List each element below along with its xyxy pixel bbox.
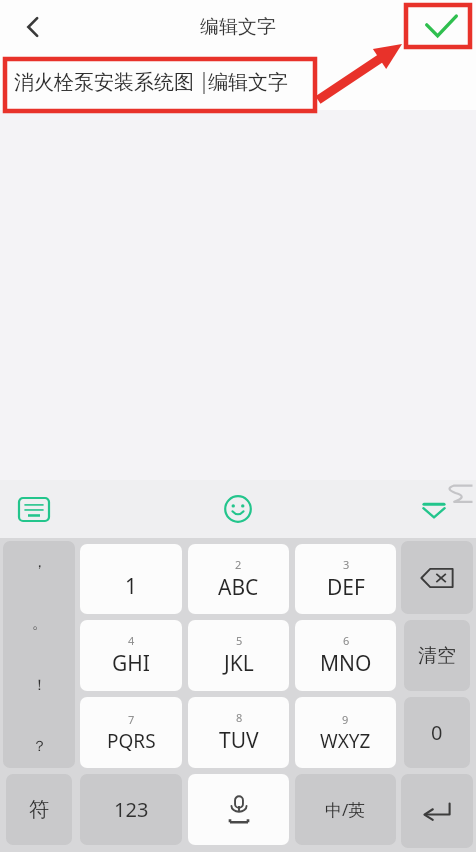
staticText: 123 (114, 796, 149, 823)
button[interactable]: Enter (401, 774, 473, 848)
staticText: JKL (224, 649, 254, 678)
staticText: 8 (236, 710, 243, 725)
button[interactable]: Emoji (215, 486, 261, 532)
staticText: WXYZ (320, 728, 371, 754)
button[interactable]: 符 (6, 774, 72, 845)
button[interactable]: Hide keyboard (412, 487, 456, 531)
staticText: 0 (431, 719, 443, 746)
button[interactable]: Confirm (412, 6, 470, 48)
staticText: ？ (32, 737, 47, 756)
staticText: 编辑文字 (200, 15, 276, 39)
button[interactable]: Back (6, 0, 60, 54)
staticText: ！ (32, 676, 47, 695)
button[interactable]: 4 (80, 620, 182, 691)
staticText: 中/英 (325, 798, 366, 821)
staticText: 4 (128, 633, 135, 648)
button[interactable]: 8 (188, 697, 289, 768)
staticText: TUV (219, 726, 259, 755)
staticText: ， (32, 553, 47, 572)
staticText: 3 (343, 557, 350, 572)
staticText: DEF (327, 573, 365, 602)
staticText: GHI (112, 649, 150, 678)
button[interactable]: 9 (295, 697, 396, 768)
staticText: 消火栓泵安装系统图 (14, 70, 194, 95)
staticText: 清空 (418, 644, 456, 668)
staticText: 1 (125, 572, 138, 601)
staticText: 2 (235, 557, 242, 572)
button[interactable]: 消火栓泵安装系统图 (0, 54, 476, 110)
staticText: 7 (128, 712, 135, 727)
button[interactable]: 清空 (404, 620, 470, 691)
staticText: 9 (342, 712, 349, 727)
staticText: 5 (236, 633, 243, 648)
staticText: 。 (32, 614, 47, 633)
button[interactable]: 7 (80, 697, 182, 768)
staticText: PQRS (107, 728, 156, 754)
button[interactable]: Space and voice input (188, 774, 289, 845)
staticText: MNO (320, 649, 372, 678)
button[interactable]: 1 (80, 544, 182, 614)
button[interactable]: Keyboard layout (12, 487, 56, 531)
button[interactable]: 6 (295, 620, 396, 691)
staticText: 符 (29, 797, 49, 822)
staticText: 6 (343, 633, 350, 648)
button[interactable]: 5 (188, 620, 289, 691)
button[interactable]: 0 (404, 697, 470, 768)
staticText: ABC (218, 573, 259, 602)
button[interactable]: ， (3, 541, 75, 768)
button[interactable]: 2 (188, 544, 289, 614)
staticText: 编辑文字 (208, 70, 288, 95)
button[interactable]: Backspace (401, 541, 473, 614)
button[interactable]: 3 (295, 544, 396, 614)
button[interactable]: 中/英 (295, 774, 396, 845)
button[interactable]: 123 (80, 774, 182, 845)
